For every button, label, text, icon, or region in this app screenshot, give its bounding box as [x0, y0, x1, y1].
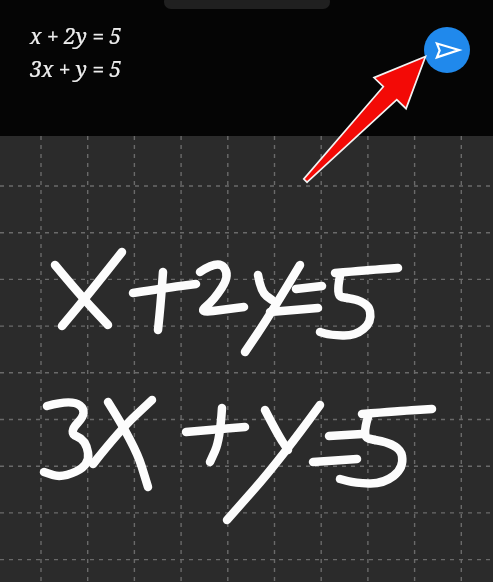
button[interactable]: Send	[424, 27, 470, 73]
staticText: 3x + y = 5	[30, 55, 122, 84]
staticText: x + 2y = 5	[30, 22, 122, 51]
